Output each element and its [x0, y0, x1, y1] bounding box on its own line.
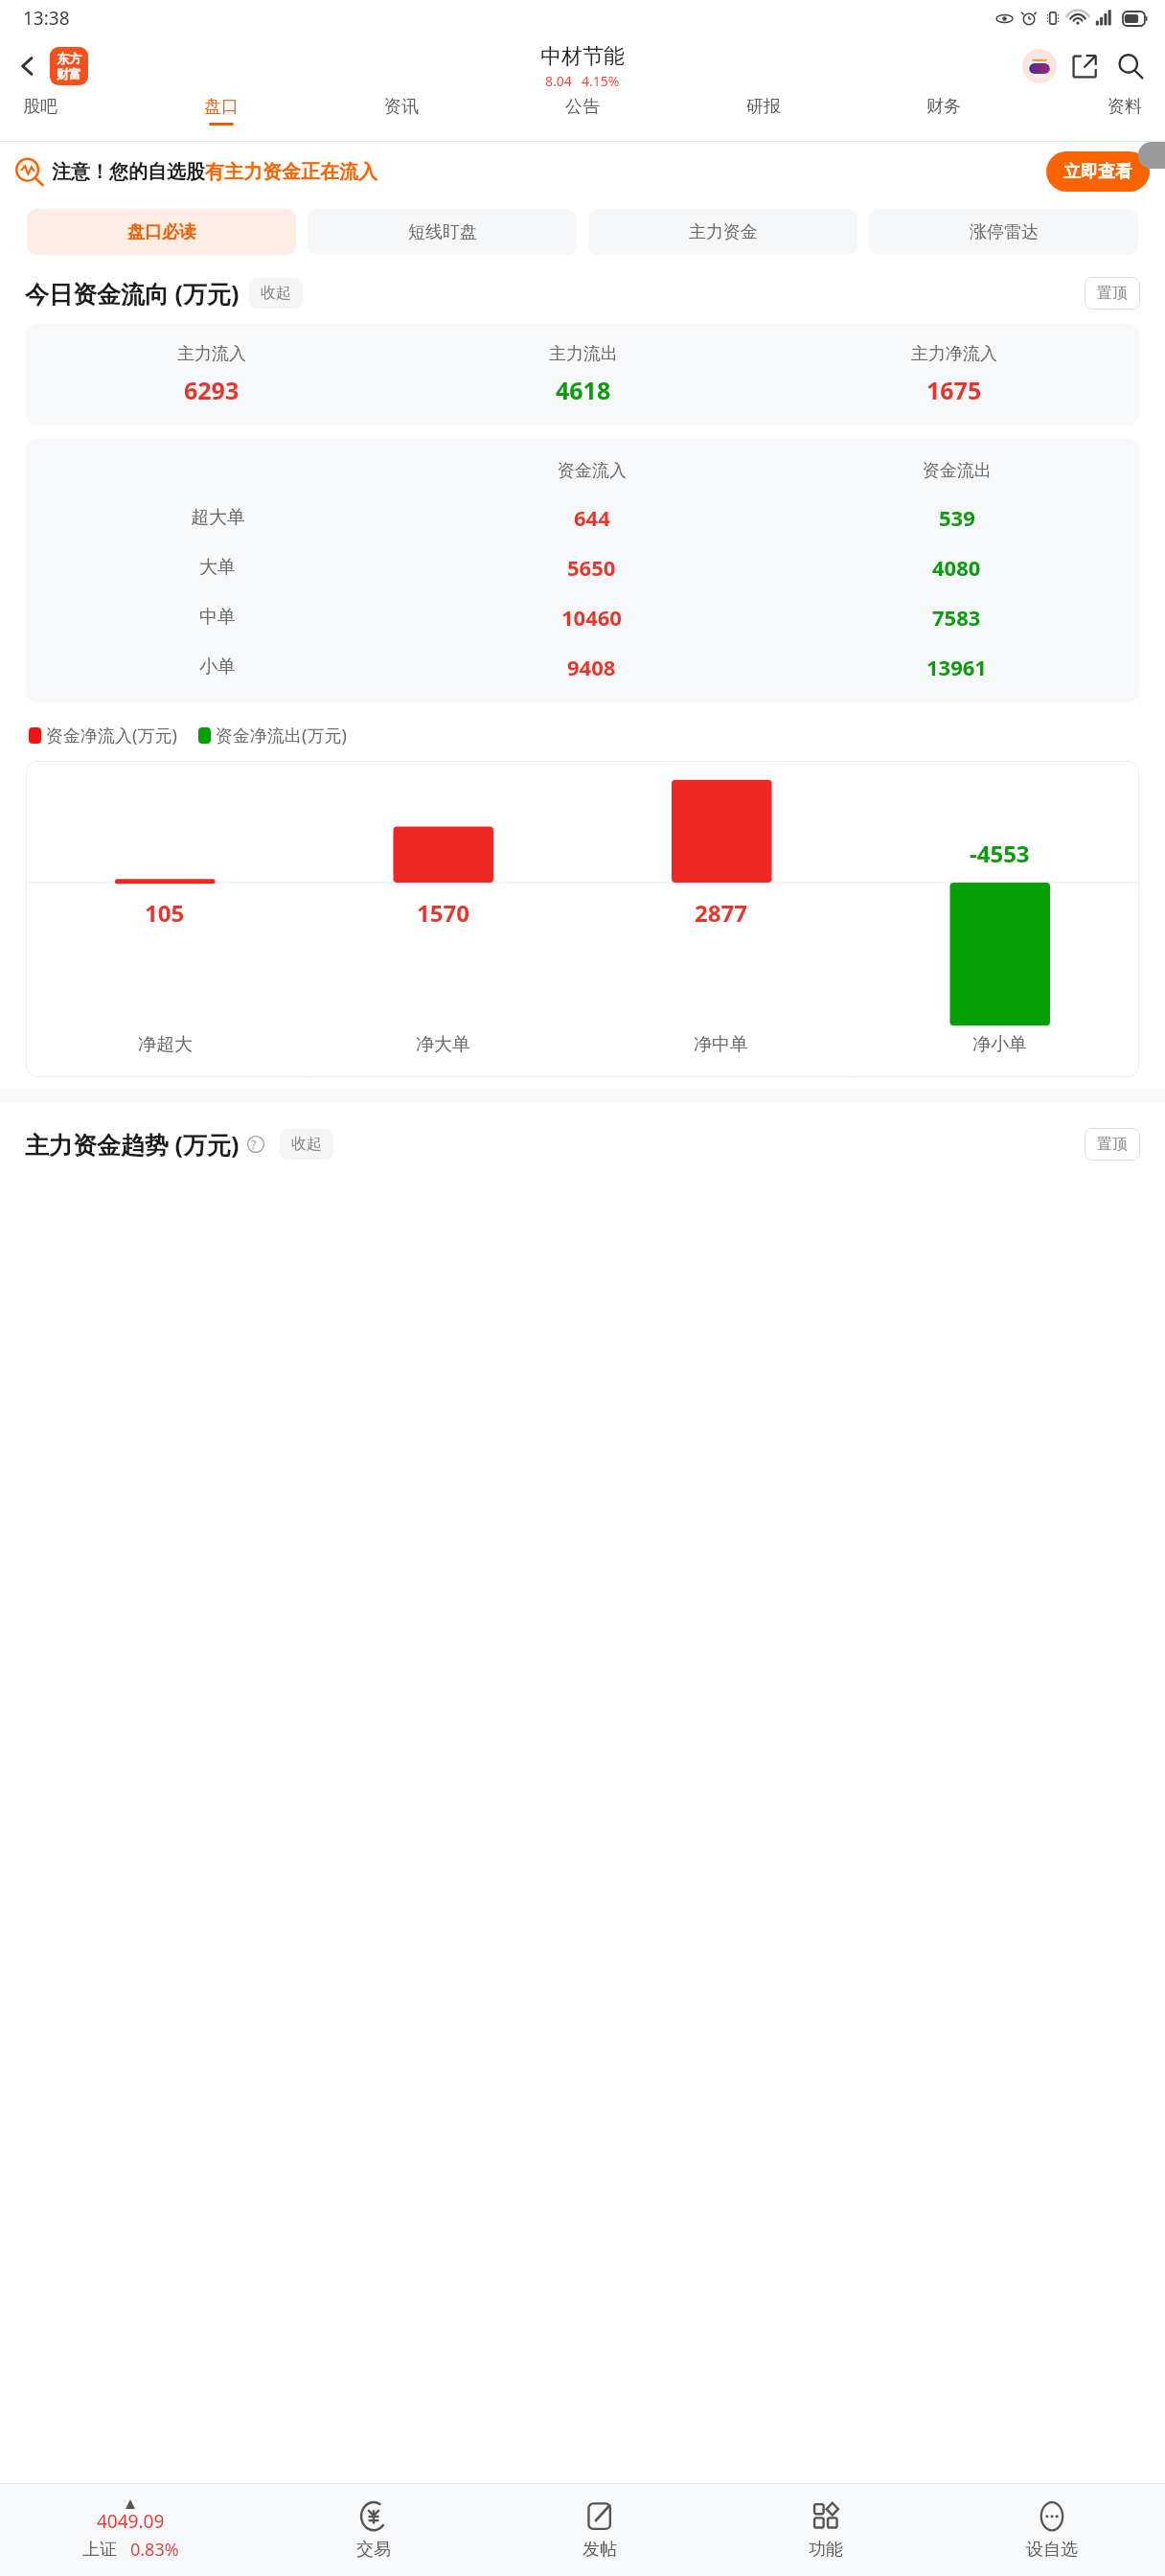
button[interactable]: 研报: [739, 96, 788, 126]
staticText: 5650: [567, 553, 616, 582]
button[interactable]: 立即查看: [1046, 151, 1150, 192]
staticText: 7583: [932, 603, 981, 632]
button[interactable]: 盘口: [196, 96, 246, 126]
staticText: 今日资金流向 (万元): [25, 277, 240, 310]
staticText: -4553: [970, 838, 1030, 869]
staticText: 设自选: [1026, 2539, 1078, 2561]
staticText: 有主力资金正在流入: [205, 160, 377, 184]
button[interactable]: 置顶: [1085, 1128, 1140, 1161]
staticText: 1570: [417, 897, 469, 929]
staticText: 主力流出: [549, 343, 618, 365]
button[interactable]: 盘口必读: [27, 209, 296, 255]
staticText: 净大单: [416, 1033, 470, 1056]
staticText: 立即查看: [1063, 161, 1132, 183]
staticText: 交易: [356, 2539, 391, 2561]
staticText: 主力流入: [177, 343, 246, 365]
button[interactable]: 公告: [558, 96, 607, 126]
staticText: 财务: [926, 96, 961, 118]
staticText: 资金流入: [558, 460, 627, 482]
staticText: 13961: [926, 653, 987, 681]
button[interactable]: 东方财富: [50, 47, 88, 85]
button[interactable]: 4049.09: [0, 2499, 261, 2562]
button[interactable]: Share: [1062, 43, 1108, 89]
staticText: 1675: [926, 374, 982, 406]
staticText: 净小单: [972, 1033, 1027, 1056]
staticText: 收起: [291, 1135, 322, 1154]
button[interactable]: 功能: [713, 2500, 939, 2561]
button[interactable]: 资讯: [377, 96, 426, 126]
button[interactable]: Back: [6, 44, 50, 88]
button[interactable]: 收起: [249, 278, 303, 309]
staticText: 主力资金趋势 (万元): [25, 1128, 240, 1161]
staticText: 大单: [199, 556, 236, 579]
staticText: 收起: [261, 284, 291, 303]
staticText: 公告: [565, 96, 600, 118]
button[interactable]: 交易: [261, 2500, 487, 2561]
staticText: 置顶: [1097, 1135, 1128, 1154]
staticText: 资金流出: [923, 460, 992, 482]
staticText: 资料: [1108, 96, 1142, 118]
staticText: 发帖: [582, 2539, 617, 2561]
staticText: 上证: [82, 2539, 117, 2561]
staticText: 6293: [184, 374, 240, 406]
staticText: 主力净流入: [911, 343, 997, 365]
staticText: 股吧: [23, 96, 57, 118]
staticText: 超大单: [191, 506, 245, 529]
staticText: 2877: [695, 897, 747, 929]
button[interactable]: 短线盯盘: [308, 209, 577, 255]
staticText: 小单: [199, 655, 236, 678]
staticText: 4049.09: [97, 2509, 165, 2534]
staticText: 644: [574, 503, 610, 532]
button[interactable]: 财务: [919, 96, 969, 126]
staticText: 您的自选股: [109, 160, 205, 184]
staticText: ?: [251, 1137, 257, 1152]
staticText: 105: [145, 897, 185, 929]
staticText: 东方: [57, 51, 81, 66]
staticText: 539: [939, 503, 975, 532]
staticText: 资金净流出(万元): [216, 724, 347, 747]
staticText: 涨停雷达: [970, 221, 1039, 243]
staticText: 注意！: [52, 160, 109, 184]
staticText: 0.83%: [130, 2538, 179, 2562]
staticText: 研报: [746, 96, 781, 118]
button[interactable]: Search: [1108, 43, 1154, 89]
staticText: 4080: [932, 553, 981, 582]
staticText: 短线盯盘: [408, 221, 477, 243]
staticText: 财富: [57, 66, 81, 81]
staticText: 主力资金: [689, 221, 758, 243]
staticText: 中材节能: [540, 43, 625, 70]
button[interactable]: 主力资金: [588, 209, 857, 255]
staticText: 资讯: [384, 96, 419, 118]
staticText: 13:38: [23, 6, 70, 31]
staticText: 8.04: [545, 72, 572, 90]
staticText: 10460: [561, 603, 622, 632]
button[interactable]: 涨停雷达: [869, 209, 1138, 255]
staticText: 9408: [567, 653, 616, 681]
button[interactable]: 股吧: [15, 96, 65, 126]
button[interactable]: 收起: [280, 1129, 333, 1160]
staticText: 4.15%: [582, 72, 620, 90]
staticText: 净超大: [138, 1033, 193, 1056]
staticText: 资金净流入(万元): [46, 724, 177, 747]
staticText: 4618: [556, 374, 611, 406]
staticText: 盘口必读: [127, 221, 196, 243]
button[interactable]: Close: [1138, 142, 1165, 169]
button[interactable]: 发帖: [487, 2500, 713, 2561]
staticText: 净中单: [694, 1033, 748, 1056]
button[interactable]: 置顶: [1085, 277, 1140, 310]
staticText: 功能: [809, 2539, 843, 2561]
staticText: 盘口: [204, 96, 239, 118]
staticText: 置顶: [1097, 284, 1128, 303]
button[interactable]: 设自选: [939, 2500, 1165, 2561]
button[interactable]: AI assistant: [1017, 44, 1062, 88]
button[interactable]: 资料: [1100, 96, 1150, 126]
staticText: 中单: [199, 606, 236, 629]
